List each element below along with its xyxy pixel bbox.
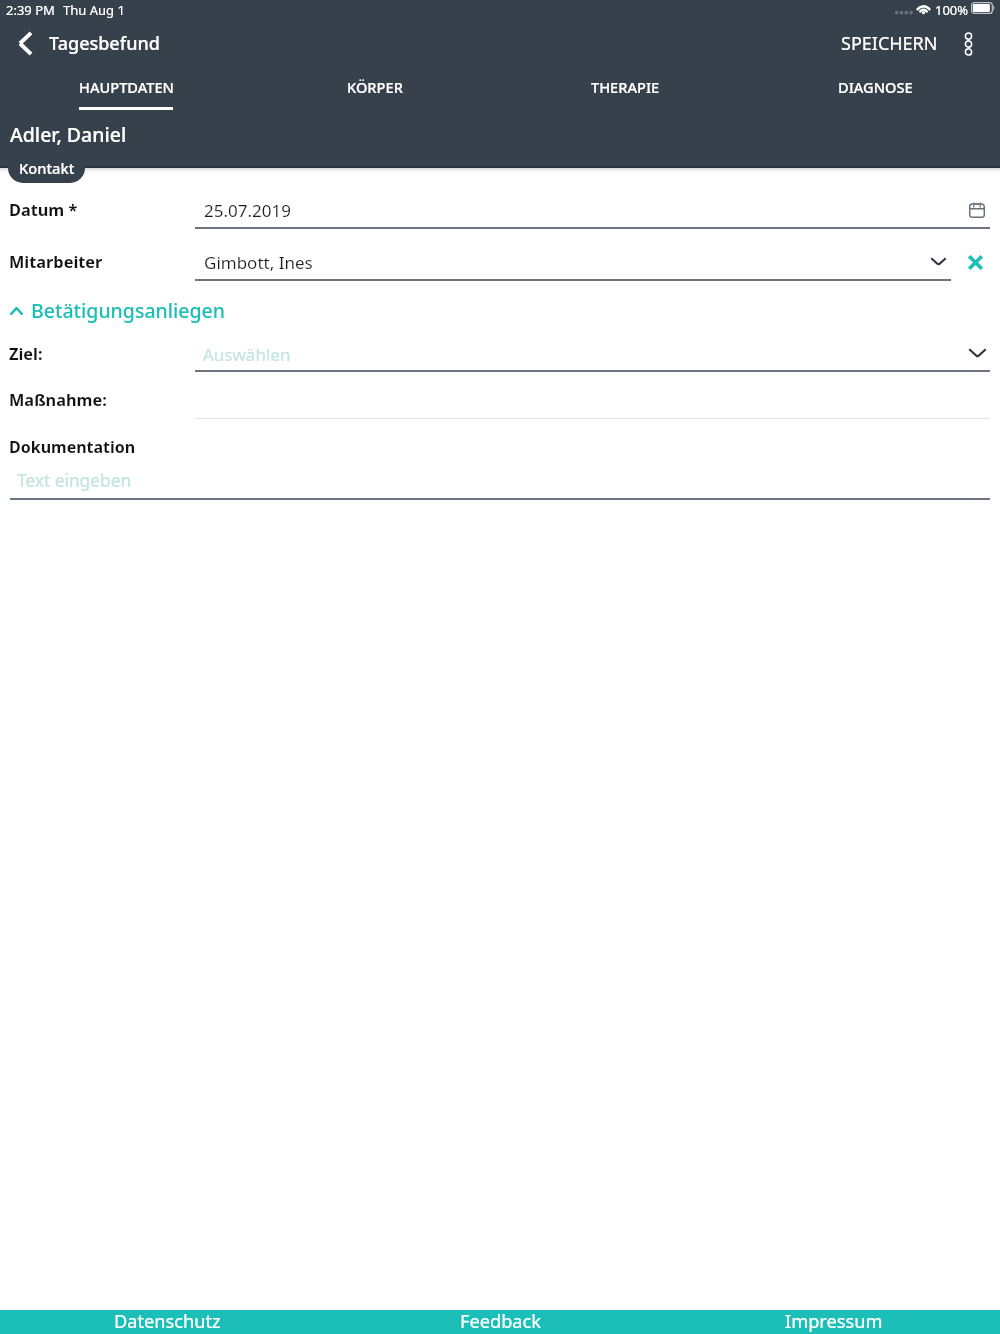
button[interactable]: HAUPTDATEN [1,66,251,108]
staticText: Adler, Daniel [10,121,127,148]
staticText: Thu Aug 1 [63,1,125,19]
button[interactable]: More options [945,21,991,67]
staticText: 25.07.2019 [204,199,291,222]
staticText: Datum * [9,199,78,221]
staticText: Ziel: [9,343,43,365]
staticText: Kontakt [19,158,75,178]
button[interactable]: Impressum [667,1310,1000,1334]
button[interactable]: Open employee dropdown [922,245,955,278]
button[interactable]: Clear employee [959,246,992,279]
staticText: 2:39 PM [6,1,55,19]
staticText: Mitarbeiter [9,251,103,273]
staticText: DIAGNOSE [838,77,913,97]
button[interactable]: Kontakt [8,155,85,183]
staticText: THERAPIE [591,77,660,97]
staticText: Tagesbefund [49,31,160,56]
button[interactable]: THERAPIE [500,66,750,108]
staticText: SPEICHERN [841,31,938,56]
button[interactable]: SPEICHERN [825,20,954,66]
button[interactable]: Datenschutz [0,1310,334,1334]
staticText: Dokumentation [9,436,136,458]
staticText: Impressum [785,1309,883,1333]
staticText: Maßnahme: [9,389,107,411]
staticText: Feedback [460,1309,541,1333]
staticText: Datenschutz [114,1309,221,1333]
button[interactable]: Back [2,20,48,66]
button[interactable]: Open goal dropdown [961,336,994,369]
button[interactable]: KÖRPER [250,66,500,108]
staticText: KÖRPER [347,77,403,97]
button[interactable]: Pick date [960,193,994,227]
staticText: Betätigungsanliegen [31,297,226,324]
staticText: HAUPTDATEN [79,77,174,97]
button[interactable]: Betätigungsanliegen [2,296,242,326]
button[interactable]: Tagesbefund [49,20,160,66]
staticText: Text eingeben [17,469,132,493]
staticText: Auswählen [203,343,291,366]
staticText: 100% [935,1,969,19]
button[interactable]: DIAGNOSE [750,66,1000,108]
button[interactable]: Feedback [334,1310,667,1334]
staticText: Gimbott, Ines [204,251,313,274]
